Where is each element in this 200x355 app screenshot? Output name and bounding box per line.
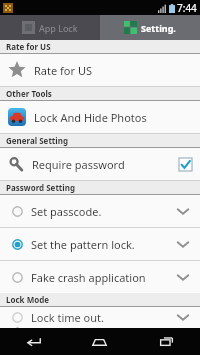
- button[interactable]: Lock And Hide Photos: [0, 101, 200, 133]
- staticText: Other Tools: [6, 88, 52, 99]
- button[interactable]: Home: [66, 328, 133, 355]
- staticText: Rate for US: [6, 41, 51, 52]
- button[interactable]: Set the pattern lock.: [0, 228, 200, 260]
- staticText: Set passcode.: [31, 204, 176, 219]
- staticText: Require password: [32, 157, 179, 172]
- staticText: Setting.: [141, 22, 176, 34]
- button[interactable]: Lock time out.: [0, 307, 200, 328]
- button[interactable]: Require password: [0, 148, 200, 180]
- button[interactable]: Back: [0, 328, 66, 355]
- button[interactable]: Setting.: [100, 15, 200, 40]
- staticText: Password Setting: [6, 182, 75, 193]
- button[interactable]: App Lock: [0, 15, 100, 40]
- button[interactable]: Set passcode.: [0, 195, 200, 227]
- button[interactable]: Recent apps: [133, 328, 200, 355]
- button[interactable]: Rate for US: [0, 54, 200, 86]
- staticText: Lock Mode: [6, 294, 50, 305]
- staticText: General Setting: [6, 135, 68, 146]
- staticText: Lock And Hide Photos: [34, 110, 147, 125]
- staticText: 7:44: [177, 1, 197, 15]
- staticText: App Lock: [39, 22, 78, 34]
- staticText: Rate for US: [34, 63, 92, 78]
- staticText: Set the pattern lock.: [31, 237, 176, 252]
- staticText: Lock time out.: [31, 310, 176, 325]
- staticText: Fake crash application: [31, 270, 176, 285]
- button[interactable]: Fake crash application: [0, 261, 200, 293]
